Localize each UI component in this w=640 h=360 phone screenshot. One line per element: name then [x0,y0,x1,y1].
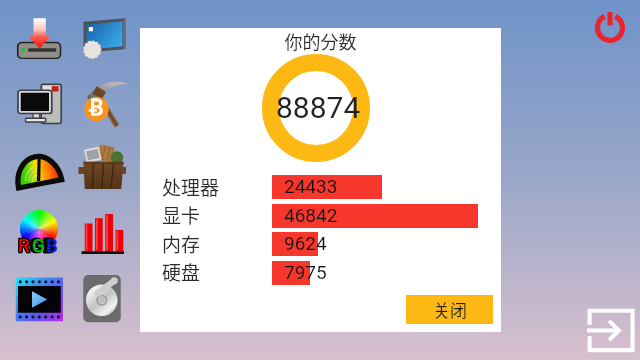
button[interactable]: Install [13,14,63,64]
staticText: RGB [19,233,56,255]
staticText: G [32,234,45,256]
staticText: 显卡 [162,201,201,229]
staticText: RGB [19,234,56,256]
staticText: B [46,234,58,256]
button[interactable]: Storage box [77,144,127,194]
button[interactable]: Disk drive [77,272,127,322]
staticText: 24433 [284,175,338,197]
staticText: 88874 [276,90,361,125]
button[interactable]: Video player [13,272,63,322]
button[interactable]: Exit [586,306,634,354]
staticText: Ƀ [89,95,104,121]
button[interactable]: Mining [77,80,127,130]
staticText: RGB [17,234,54,256]
staticText: RGB [19,235,56,257]
staticText: RGB [18,233,55,255]
staticText: RGB [18,235,55,257]
staticText: 处理器 [162,173,220,201]
button[interactable]: Statistics [77,208,127,258]
staticText: 硬盘 [162,258,201,286]
staticText: 内存 [162,230,201,258]
button[interactable]: Benchmark [13,144,63,194]
button[interactable]: Display settings [77,14,127,64]
button[interactable]: Power off [591,8,629,46]
staticText: RGB [17,233,54,255]
button[interactable]: Colour test [13,208,63,258]
button[interactable]: 关闭 [406,295,493,324]
button[interactable]: My computer [13,80,63,130]
staticText: 7975 [284,261,327,283]
staticText: 9624 [284,232,327,254]
staticText: R [18,234,30,256]
staticText: 你的分数 [140,28,501,54]
staticText: 46842 [284,204,338,226]
staticText: 关闭 [433,297,467,322]
staticText: RGB [17,235,54,257]
